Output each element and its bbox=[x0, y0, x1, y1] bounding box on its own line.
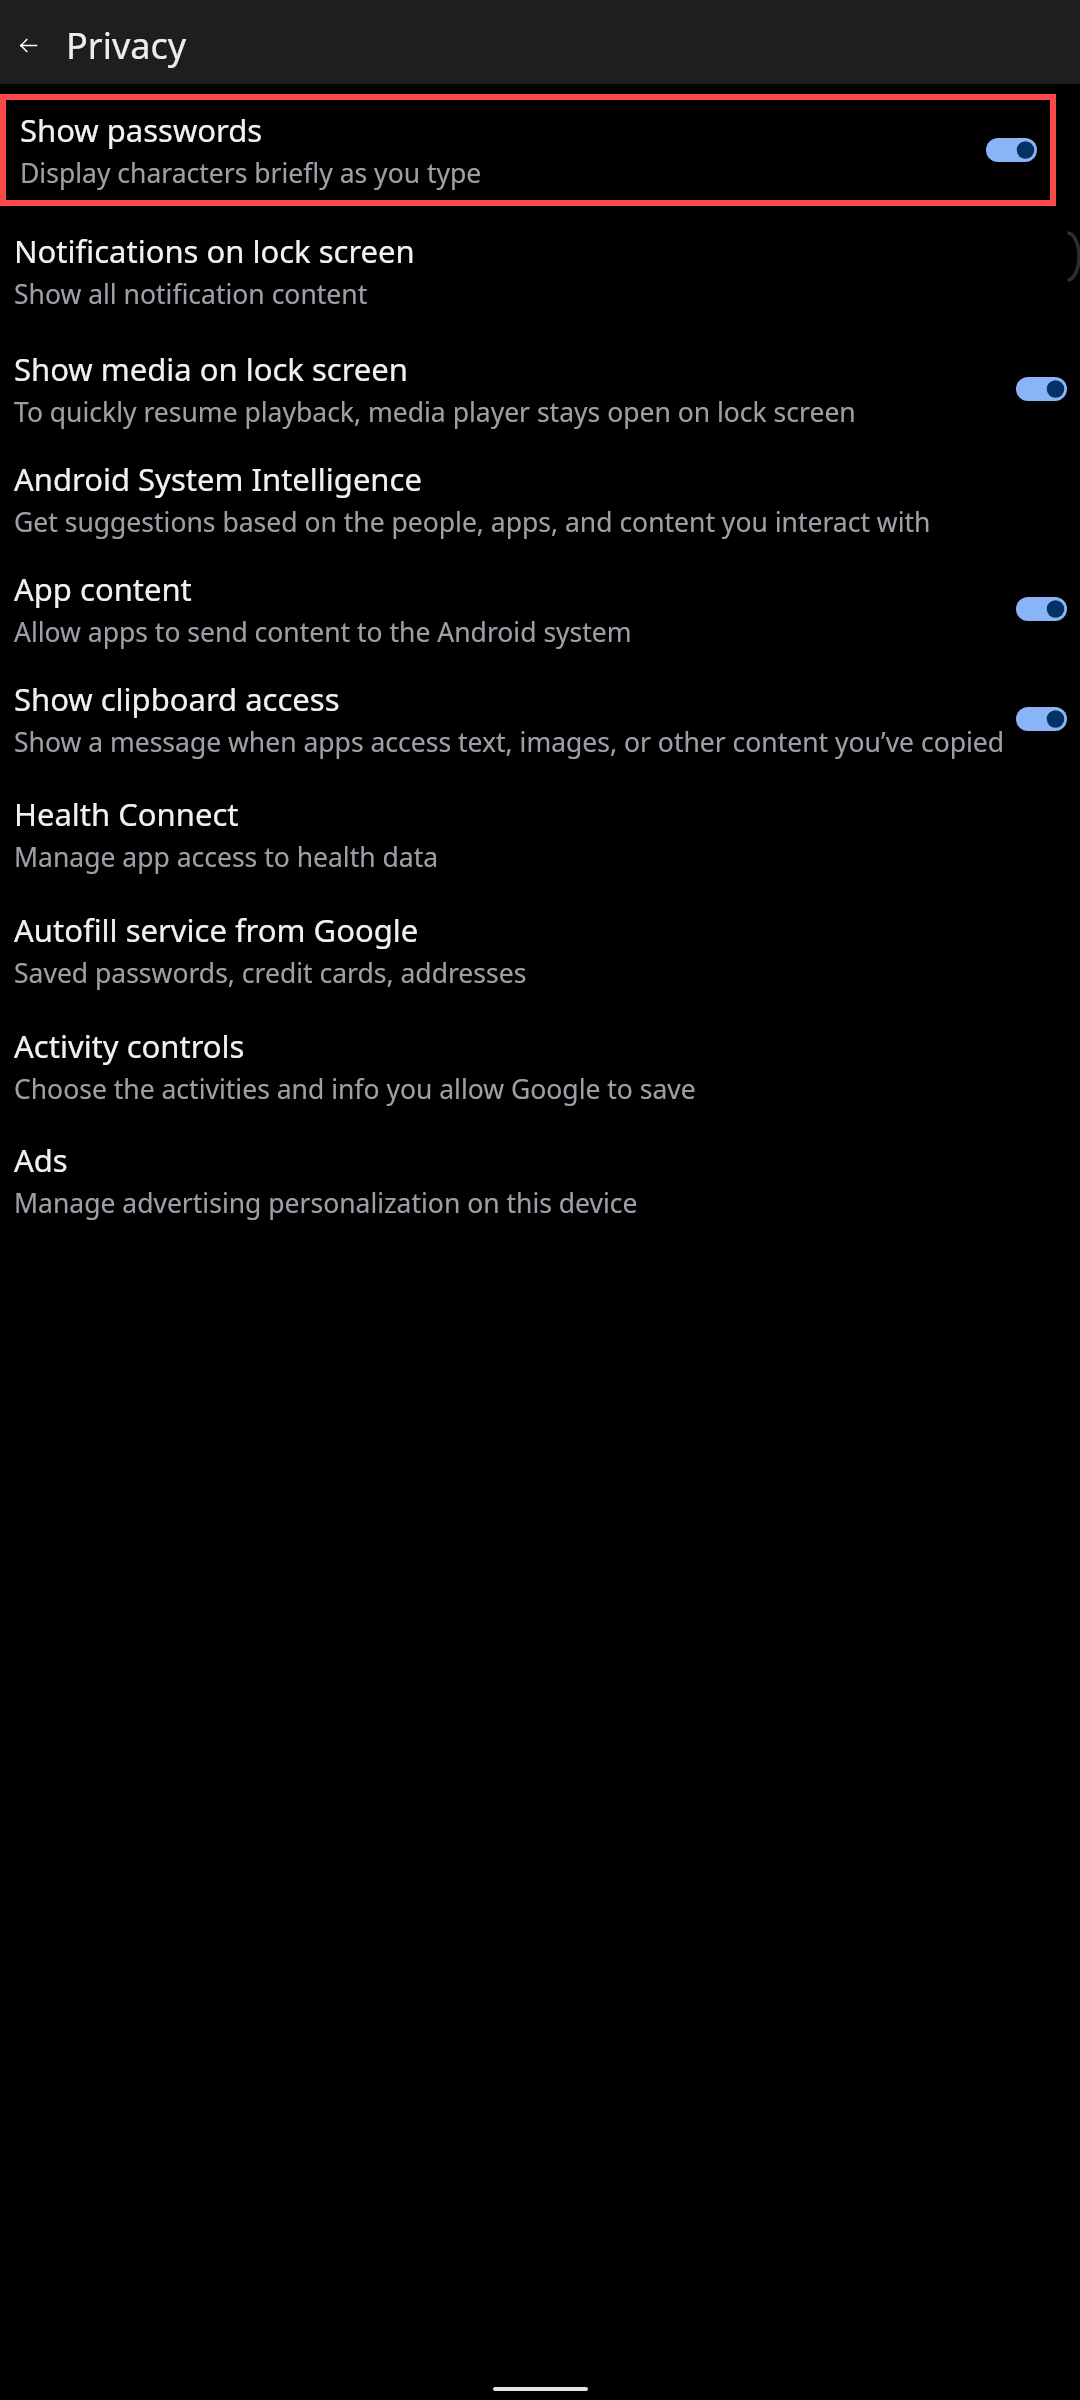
staticText: Show passwords bbox=[20, 109, 263, 151]
button[interactable]: Autofill service from Google bbox=[0, 900, 1080, 1000]
staticText: Autofill service from Google bbox=[14, 909, 419, 951]
staticText: Show media on lock screen bbox=[14, 348, 408, 390]
staticText: Choose the activities and info you allow… bbox=[14, 1071, 696, 1107]
button[interactable]: App content bbox=[0, 562, 1080, 656]
button[interactable]: Health Connect bbox=[0, 784, 1080, 884]
button[interactable]: Toggle setting bbox=[1016, 597, 1067, 621]
staticText: Allow apps to send content to the Androi… bbox=[14, 614, 632, 650]
staticText: Manage advertising personalization on th… bbox=[14, 1185, 638, 1221]
staticText: Display characters briefly as you type bbox=[20, 155, 482, 191]
button[interactable]: Activity controls bbox=[0, 1016, 1080, 1116]
staticText: Get suggestions based on the people, app… bbox=[14, 504, 931, 540]
staticText: App content bbox=[14, 568, 192, 610]
staticText: Android System Intelligence bbox=[14, 458, 422, 500]
button[interactable]: Android System Intelligence bbox=[0, 452, 1080, 546]
button[interactable]: Show media on lock screen bbox=[0, 342, 1080, 436]
button[interactable]: Toggle setting bbox=[986, 138, 1037, 162]
button[interactable]: Notifications on lock screen bbox=[0, 218, 1080, 324]
button[interactable]: Back bbox=[8, 25, 49, 66]
button[interactable]: Ads bbox=[0, 1133, 1080, 1227]
staticText: Privacy bbox=[66, 21, 187, 70]
staticText: Activity controls bbox=[14, 1025, 245, 1067]
button[interactable]: Show passwords bbox=[6, 100, 1050, 200]
staticText: Show clipboard access bbox=[14, 678, 340, 720]
staticText: Health Connect bbox=[14, 793, 239, 835]
staticText: Notifications on lock screen bbox=[14, 230, 415, 272]
button[interactable]: Toggle setting bbox=[1016, 707, 1067, 731]
staticText: Ads bbox=[14, 1139, 68, 1181]
staticText: Manage app access to health data bbox=[14, 839, 439, 875]
button[interactable]: Show clipboard access bbox=[0, 672, 1080, 766]
button[interactable]: Toggle setting bbox=[1016, 377, 1067, 401]
staticText: Show a message when apps access text, im… bbox=[14, 724, 1005, 760]
staticText: To quickly resume playback, media player… bbox=[14, 394, 856, 430]
staticText: Saved passwords, credit cards, addresses bbox=[14, 955, 527, 991]
staticText: Show all notification content bbox=[14, 276, 368, 312]
